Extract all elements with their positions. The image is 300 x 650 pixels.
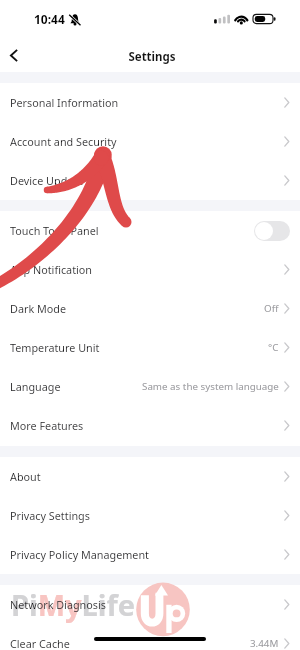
- staticText: Clear Cache: [10, 636, 70, 650]
- staticText: 10:44: [34, 11, 65, 27]
- button[interactable]: Dark Mode: [0, 289, 300, 328]
- button[interactable]: Personal Information: [0, 83, 300, 122]
- button[interactable]: Temperature Unit: [0, 328, 300, 367]
- staticText: Off: [264, 302, 279, 315]
- staticText: Temperature Unit: [10, 340, 100, 355]
- staticText: App Notification: [10, 262, 93, 277]
- staticText: Personal Information: [10, 95, 119, 110]
- staticText: More Features: [10, 418, 84, 433]
- button[interactable]: Privacy Policy Management: [0, 535, 300, 574]
- staticText: Touch Tone Panel: [10, 223, 99, 238]
- staticText: Device Update: [10, 173, 84, 188]
- button[interactable]: Back: [0, 41, 28, 69]
- button[interactable]: Privacy Settings: [0, 496, 300, 535]
- staticText: °C: [268, 341, 279, 354]
- staticText: Settings: [128, 49, 176, 65]
- staticText: Same as the system language: [142, 380, 279, 393]
- staticText: Language: [10, 379, 61, 394]
- button[interactable]: Language: [0, 367, 300, 406]
- other: Silent mode: [70, 14, 80, 25]
- staticText: 3.44M: [250, 637, 279, 650]
- button[interactable]: Clear Cache: [0, 624, 300, 650]
- staticText: PiMyLife: [11, 585, 136, 624]
- button[interactable]: Network Diagnosis: [0, 585, 300, 624]
- button[interactable]: Account and Security: [0, 122, 300, 161]
- staticText: Privacy Policy Management: [10, 547, 150, 562]
- button[interactable]: About: [0, 457, 300, 496]
- staticText: About: [10, 469, 41, 484]
- button[interactable]: App Notification: [0, 250, 300, 289]
- staticText: Privacy Settings: [10, 508, 90, 523]
- staticText: Dark Mode: [10, 301, 67, 316]
- button[interactable]: Touch Tone Panel: [0, 211, 300, 250]
- button[interactable]: More Features: [0, 406, 300, 445]
- button[interactable]: Touch Tone Panel toggle: [254, 221, 290, 241]
- button[interactable]: Device Update: [0, 161, 300, 200]
- staticText: Account and Security: [10, 134, 117, 149]
- staticText: Network Diagnosis: [10, 597, 106, 612]
